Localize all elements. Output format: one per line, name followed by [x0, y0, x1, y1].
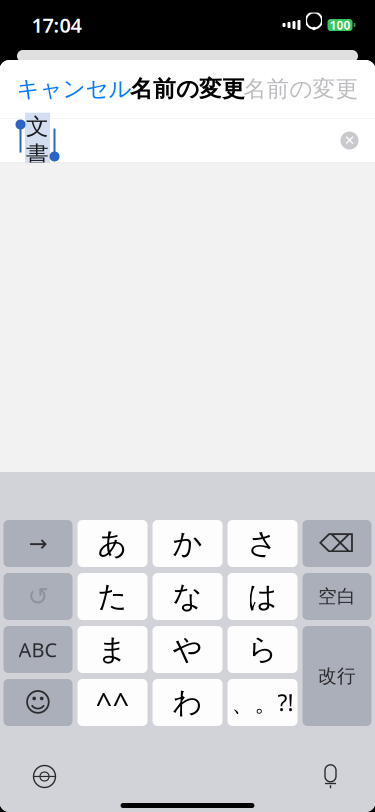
staticText: ✕	[344, 133, 355, 148]
staticText: →	[28, 531, 47, 556]
staticText: 改行	[318, 664, 356, 687]
staticText: ^^	[95, 683, 129, 722]
staticText: ⌫	[319, 529, 355, 558]
staticText: か	[172, 525, 202, 561]
button[interactable]: 改行	[302, 626, 371, 726]
staticText: 空白	[318, 585, 356, 608]
button[interactable]: わ	[152, 679, 222, 726]
button[interactable]: や	[152, 626, 222, 673]
staticText: た	[97, 578, 127, 614]
button[interactable]: 、。?!	[227, 679, 297, 726]
staticText: さ	[247, 525, 277, 561]
button[interactable]: 音声入力	[305, 754, 355, 798]
staticText: 名前の変更	[130, 75, 245, 103]
button[interactable]: な	[152, 573, 222, 620]
staticText: 100	[329, 17, 350, 33]
button[interactable]: ABC	[3, 626, 72, 673]
button[interactable]: キャンセル	[0, 67, 148, 111]
button[interactable]: 言語を切り替え	[19, 754, 69, 798]
staticText: わ	[172, 684, 202, 720]
button[interactable]: た	[77, 573, 147, 620]
button[interactable]: 消去	[331, 118, 367, 162]
staticText: あ	[97, 525, 127, 561]
button[interactable]: 名前の変更	[226, 67, 375, 111]
staticText: な	[172, 578, 202, 614]
button[interactable]: あ	[77, 520, 147, 567]
button[interactable]: ら	[227, 626, 297, 673]
staticText: ↺	[27, 582, 48, 611]
staticText: キャンセル	[16, 75, 131, 103]
staticText: や	[172, 631, 202, 667]
button[interactable]: か	[152, 520, 222, 567]
staticText: は	[247, 578, 277, 614]
button[interactable]: 空白	[302, 573, 371, 620]
button[interactable]: →	[3, 520, 72, 567]
staticText: 文書	[26, 113, 49, 168]
staticText: ま	[97, 631, 127, 667]
staticText: ABC	[18, 636, 57, 663]
button[interactable]: ^^	[77, 679, 147, 726]
staticText: ☺	[24, 687, 52, 718]
staticText: 17:04	[31, 12, 81, 38]
button[interactable]: は	[227, 573, 297, 620]
button[interactable]: ま	[77, 626, 147, 673]
button[interactable]: さ	[227, 520, 297, 567]
staticText: 、。?!	[231, 687, 293, 718]
button[interactable]: ☺	[3, 679, 72, 726]
staticText: ら	[247, 631, 277, 667]
button[interactable]: ↺	[3, 573, 72, 620]
staticText: 名前の変更	[243, 75, 358, 103]
button[interactable]: ⌫	[302, 520, 371, 567]
